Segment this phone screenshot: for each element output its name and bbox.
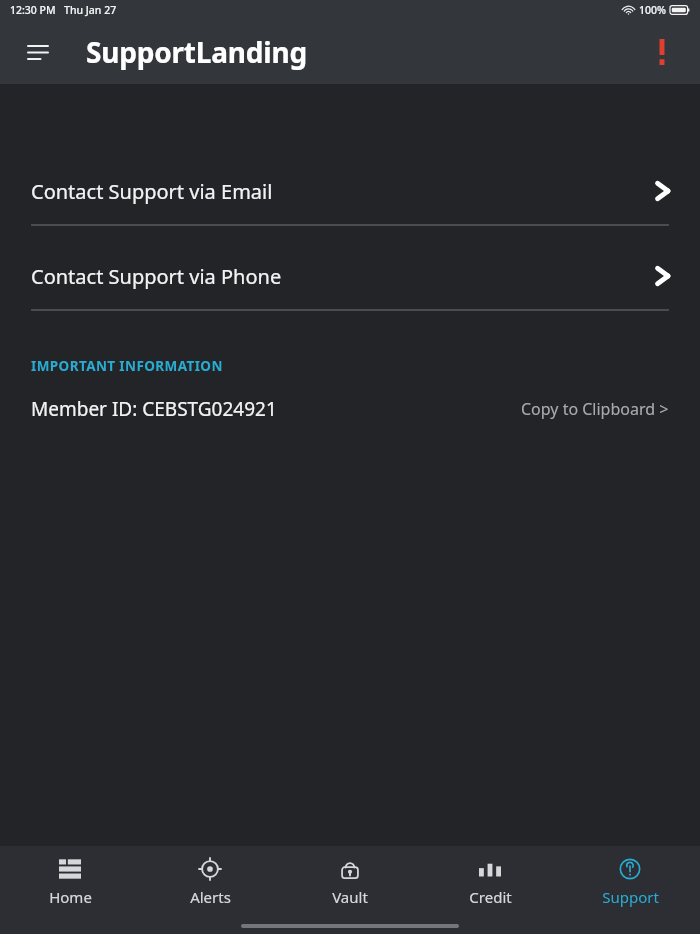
button[interactable]: Support	[560, 846, 700, 918]
button[interactable]: Contact Support via Email	[0, 158, 700, 224]
button[interactable]: Vault	[280, 846, 420, 918]
staticText: Credit	[469, 887, 512, 907]
button[interactable]: Credit	[420, 846, 560, 918]
button[interactable]: Open navigation menu	[14, 28, 62, 76]
button[interactable]: Home	[0, 846, 140, 918]
staticText: SupportLanding	[86, 33, 307, 71]
staticText: Member ID: CEBSTG024921	[31, 396, 277, 422]
staticText: Thu Jan 27	[64, 3, 117, 17]
staticText: 12:30 PM	[10, 3, 56, 17]
button[interactable]: Copy to Clipboard >	[521, 398, 669, 420]
staticText: Copy to Clipboard >	[521, 398, 669, 420]
staticText: Support	[602, 887, 659, 907]
staticText: Alerts	[190, 887, 231, 907]
staticText: Contact Support via Phone	[31, 263, 282, 290]
staticText: IMPORTANT INFORMATION	[31, 357, 223, 375]
staticText: 100%	[639, 3, 666, 17]
staticText: Home	[49, 887, 92, 907]
button[interactable]: Contact Support via Phone	[0, 243, 700, 309]
staticText: Contact Support via Email	[31, 178, 273, 205]
button[interactable]: Alerts	[638, 28, 686, 76]
button[interactable]: Alerts	[140, 846, 280, 918]
staticText: Vault	[332, 887, 368, 907]
